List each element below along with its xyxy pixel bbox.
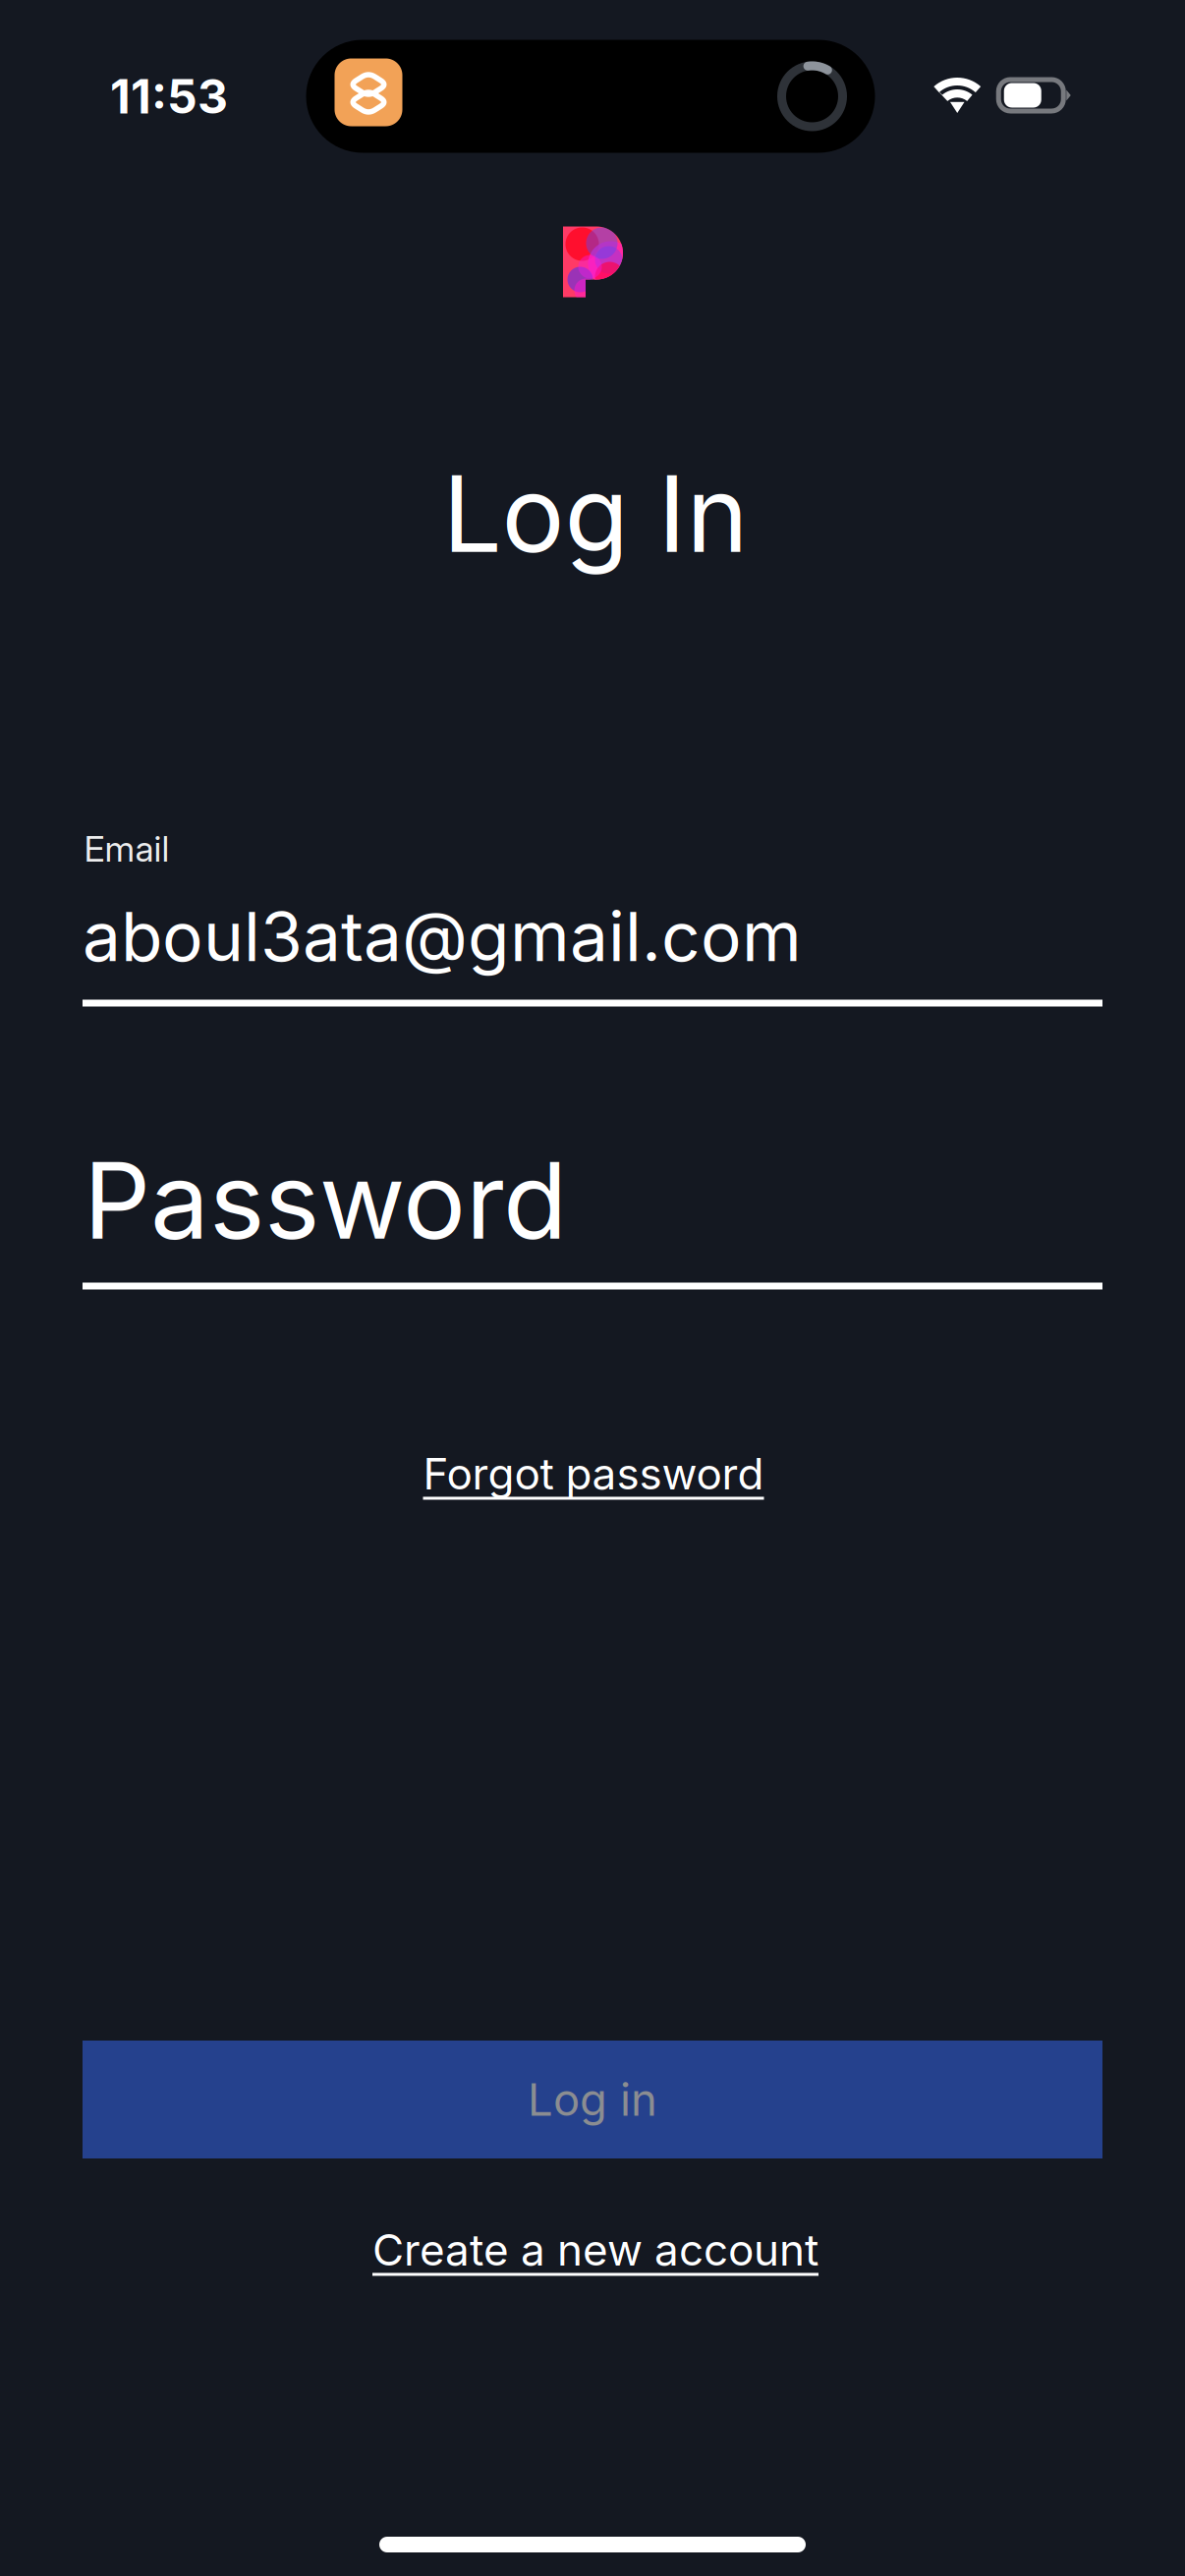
staticText: 11:53 (110, 68, 228, 125)
staticText: Password (84, 1137, 567, 1264)
staticText: Log In (443, 450, 748, 577)
staticText: Forgot password (423, 1448, 764, 1500)
button[interactable]: Forgot password (399, 1430, 788, 1518)
button[interactable]: Password (83, 1128, 1102, 1289)
button[interactable]: Log in (83, 2041, 1102, 2158)
staticText: Email (84, 827, 169, 870)
staticText: Log in (528, 2073, 657, 2127)
button[interactable]: Create a new account (349, 2206, 842, 2294)
button[interactable]: Email, aboul3ata@gmail.com (83, 824, 1102, 1006)
staticText: Create a new account (372, 2224, 818, 2276)
staticText: aboul3ata@gmail.com (83, 895, 802, 978)
